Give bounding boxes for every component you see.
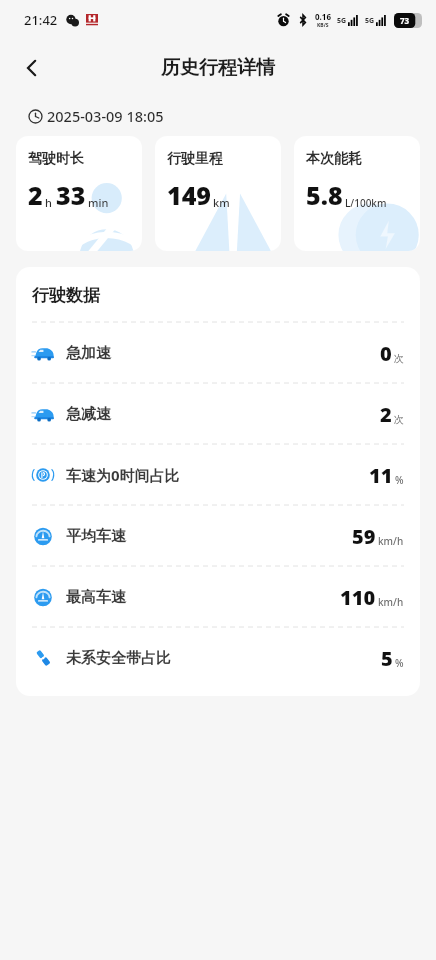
staticText: 33 — [56, 178, 86, 212]
staticText: 历史行程详情 — [161, 56, 275, 80]
staticText: km/h — [378, 595, 404, 609]
staticText: 11 — [369, 462, 393, 489]
staticText: 0 — [380, 340, 392, 367]
staticText: 149 — [167, 178, 211, 212]
button[interactable]: 行驶里程 — [155, 136, 281, 251]
button[interactable]: 平均车速 — [32, 506, 404, 566]
staticText: 73 — [400, 15, 410, 26]
button[interactable]: Back — [8, 44, 56, 92]
staticText: 急加速 — [66, 344, 111, 363]
staticText: 110 — [340, 584, 376, 611]
staticText: 驾驶时长 — [28, 150, 84, 168]
button[interactable]: 驾驶时长 — [16, 136, 142, 251]
staticText: 5G — [337, 16, 347, 26]
staticText: % — [395, 656, 404, 670]
staticText: 车速为0时间占比 — [66, 465, 180, 485]
staticText: 5.8 — [306, 178, 343, 212]
staticText: 5 — [381, 645, 393, 672]
button[interactable]: 未系安全带占比 — [32, 628, 404, 688]
staticText: 21:42 — [24, 11, 58, 29]
staticText: h — [45, 195, 52, 210]
staticText: 59 — [352, 523, 376, 550]
button[interactable]: 车速为0时间占比 — [32, 445, 404, 505]
staticText: 2025-03-09 18:05 — [47, 106, 164, 126]
staticText: 行驶数据 — [32, 285, 100, 306]
button[interactable]: 最高车速 — [32, 567, 404, 627]
staticText: 2 — [28, 178, 43, 212]
button[interactable]: 急加速 — [32, 323, 404, 383]
staticText: 次 — [394, 413, 404, 426]
staticText: % — [395, 473, 404, 487]
staticText: 次 — [394, 352, 404, 365]
staticText: KB/S — [317, 22, 329, 29]
staticText: 行驶里程 — [167, 150, 223, 168]
staticText: L/100km — [345, 196, 387, 210]
staticText: 平均车速 — [66, 527, 126, 546]
staticText: min — [88, 195, 109, 210]
staticText: 2 — [380, 401, 392, 428]
staticText: km — [213, 195, 230, 210]
staticText: km/h — [378, 534, 404, 548]
staticText: 最高车速 — [66, 588, 126, 607]
staticText: 5G — [365, 16, 375, 26]
staticText: 0.16 — [315, 11, 331, 22]
staticText: 本次能耗 — [306, 150, 362, 168]
staticText: 急减速 — [66, 405, 111, 424]
button[interactable]: 本次能耗 — [294, 136, 420, 251]
button[interactable]: 急减速 — [32, 384, 404, 444]
staticText: 未系安全带占比 — [66, 649, 171, 668]
